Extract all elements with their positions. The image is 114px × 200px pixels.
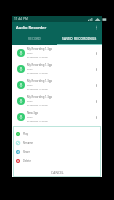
button[interactable]: My Recording 1.3gp	[12, 93, 102, 109]
staticText: My Recording 1.3gp	[27, 63, 53, 67]
staticText: CANCEL	[51, 171, 64, 175]
button[interactable]: RECORD	[12, 33, 57, 44]
staticText: 00:03	[27, 116, 33, 119]
staticText: 00:03	[27, 68, 33, 71]
staticText: 11:44 PM	[14, 17, 28, 21]
staticText: 00:03	[27, 52, 33, 55]
button[interactable]: Item options	[91, 64, 101, 74]
staticText: Share	[23, 150, 30, 154]
staticText: My Recording 1.3gp	[27, 47, 53, 51]
staticText: 01/08/2020 11:44 pm	[27, 120, 48, 123]
button[interactable]: Item options	[91, 128, 101, 138]
staticText: 01/08/2020 11:44 pm	[27, 104, 48, 107]
staticText: SAVED RECORDINGS	[62, 37, 97, 41]
staticText: New.3gp	[27, 111, 39, 115]
staticText: My Recording 1.3gp	[27, 95, 53, 99]
staticText: 01/08/2020 11:44 pm	[27, 56, 48, 59]
staticText: Audio Recorder	[16, 25, 47, 31]
staticText: 01/08/2020 11:44 pm	[27, 72, 48, 75]
staticText: RECORD	[28, 37, 41, 41]
staticText: Play	[23, 132, 29, 136]
staticText: My Recording 1.3gp	[27, 79, 53, 83]
button[interactable]: Item options	[91, 80, 101, 90]
button[interactable]: Play	[13, 129, 101, 138]
button[interactable]: My Recording 1.3gp	[12, 77, 102, 93]
button[interactable]: Item options	[91, 112, 101, 122]
button[interactable]: New.3gp	[12, 109, 102, 125]
staticText: 00:03	[27, 132, 33, 135]
button[interactable]: More options	[91, 22, 102, 33]
staticText: Delete	[23, 159, 31, 163]
button[interactable]: Item options	[91, 96, 101, 106]
button[interactable]: SAVED RECORDINGS	[57, 33, 102, 44]
button[interactable]: Item options	[91, 48, 101, 58]
staticText: 01/08/2020 11:44 pm	[27, 88, 48, 91]
staticText: 00:03	[27, 84, 33, 87]
button[interactable]: CANCEL	[13, 168, 101, 177]
button[interactable]: Rename	[13, 138, 101, 147]
staticText: 00:03	[27, 100, 33, 103]
button[interactable]: My Recording 1.3gp	[12, 61, 102, 77]
button[interactable]: Share	[13, 147, 101, 156]
button[interactable]: My Recording 2.3gp	[12, 125, 102, 141]
button[interactable]: Delete	[13, 156, 101, 165]
staticText: Rename	[23, 141, 34, 145]
button[interactable]: My Recording 1.3gp	[12, 45, 102, 61]
